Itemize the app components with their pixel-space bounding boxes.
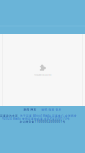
button[interactable]: 新闻 网页 bbox=[23, 108, 36, 111]
staticText: The plug-in is not supported bbox=[33, 74, 51, 76]
button[interactable]: 把百度设为主页 bbox=[0, 114, 18, 117]
button[interactable]: 关于百度 About Baidu 百度推广 全球商务 bbox=[20, 114, 78, 117]
button[interactable]: ©2024 Baidu 使用百度前必读 京ICP证030173号 bbox=[2, 117, 70, 121]
button[interactable]: 贴吧 知道 音乐 bbox=[41, 108, 61, 111]
staticText: 新闻 网页 bbox=[23, 108, 36, 111]
staticText: 把百度设为主页 bbox=[0, 114, 18, 117]
button[interactable]: 京公网安备11000002000001号 bbox=[19, 120, 65, 123]
staticText: ©2024 Baidu 使用百度前必读 京ICP证030173号 bbox=[2, 117, 70, 121]
staticText: 关于百度 About Baidu 百度推广 全球商务 bbox=[20, 114, 78, 117]
staticText: 京公网安备11000002000001号 bbox=[19, 120, 65, 123]
staticText: 贴吧 知道 音乐 bbox=[41, 108, 61, 111]
